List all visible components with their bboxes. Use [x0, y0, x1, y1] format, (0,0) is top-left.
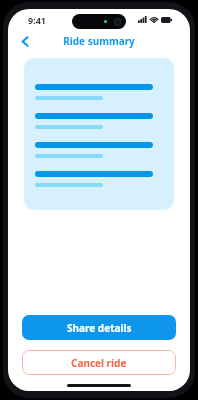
button[interactable]: Back: [16, 32, 34, 50]
button[interactable]: Share details: [22, 315, 176, 340]
staticText: Cancel ride: [71, 356, 127, 370]
staticText: Ride summary: [63, 34, 135, 48]
button[interactable]: [24, 58, 174, 210]
staticText: 9:41: [28, 14, 46, 26]
staticText: Share details: [67, 321, 132, 335]
button[interactable]: Cancel ride: [22, 350, 176, 375]
